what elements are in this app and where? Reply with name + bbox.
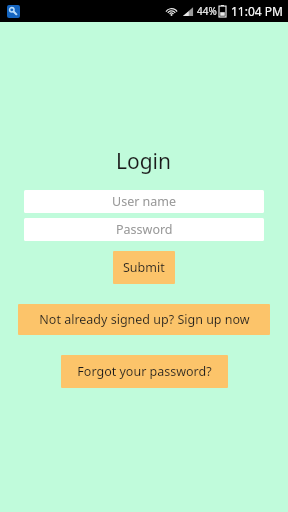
button[interactable]: Forgot your password? — [61, 355, 228, 388]
button[interactable]: Password — [24, 218, 264, 241]
button[interactable]: User name — [24, 190, 264, 213]
staticText: User name — [112, 193, 177, 210]
staticText: 11:04 PM — [231, 3, 283, 19]
staticText: Forgot your password? — [77, 363, 212, 380]
staticText: Password — [116, 221, 173, 238]
staticText: 44% — [197, 4, 217, 18]
staticText: Not already signed up? Sign up now — [39, 311, 250, 328]
staticText: Submit — [123, 259, 165, 276]
staticText: Login — [116, 147, 172, 176]
button[interactable]: Not already signed up? Sign up now — [18, 304, 270, 335]
button[interactable]: Submit — [113, 251, 175, 284]
